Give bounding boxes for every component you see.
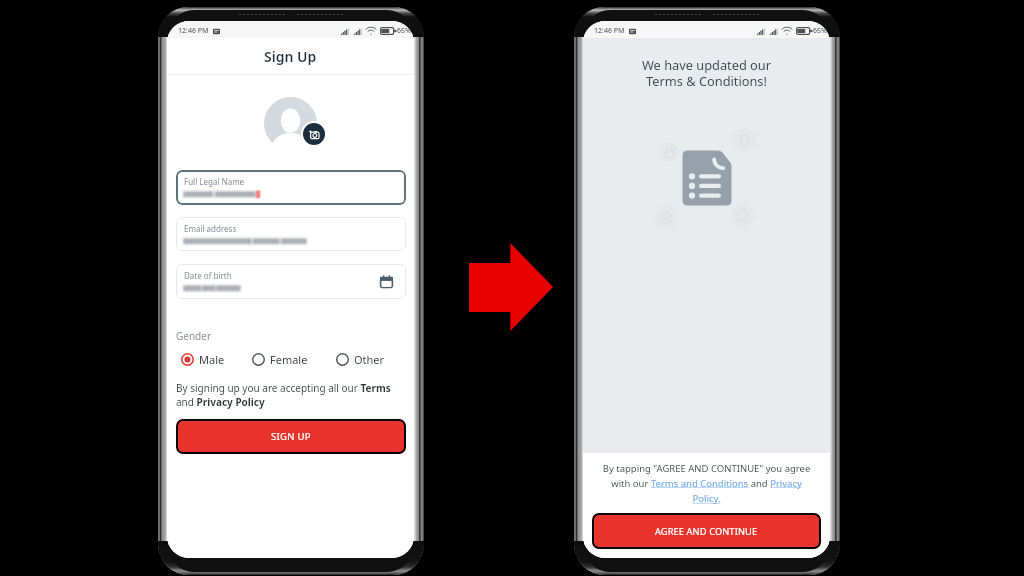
staticText: Full Legal Name [184,176,245,187]
button[interactable]: SIGN UP [176,419,406,454]
staticText: We have updated our Terms & Conditions! [583,56,830,90]
staticText: AGREE AND CONTINUE [655,525,758,538]
staticText: 12:46 PM [178,26,209,36]
button[interactable]: Full Legal Name [176,170,406,205]
staticText: Email address [184,223,237,234]
staticText: Date of birth [184,270,232,281]
button[interactable]: Other [336,349,394,369]
staticText: 65% [397,26,411,36]
button[interactable]: Change profile photo [303,123,325,145]
button[interactable]: Email address [176,217,406,251]
button[interactable]: AGREE AND CONTINUE [592,513,821,549]
staticText: 65% [813,26,827,36]
staticText: Sign Up [264,47,317,66]
staticText: Female [270,352,308,367]
staticText: By tapping "AGREE AND CONTINUE" you agre… [597,462,816,505]
staticText: 12:46 PM [594,26,625,36]
button[interactable]: Date of birth [176,264,406,299]
button[interactable]: Male [181,349,252,369]
staticText: By signing up you are accepting all our … [176,381,408,409]
staticText: Male [199,352,225,367]
button[interactable]: Female [252,349,336,369]
staticText: SIGN UP [271,430,311,443]
staticText: Other [354,352,385,367]
staticText: Gender [176,329,212,343]
